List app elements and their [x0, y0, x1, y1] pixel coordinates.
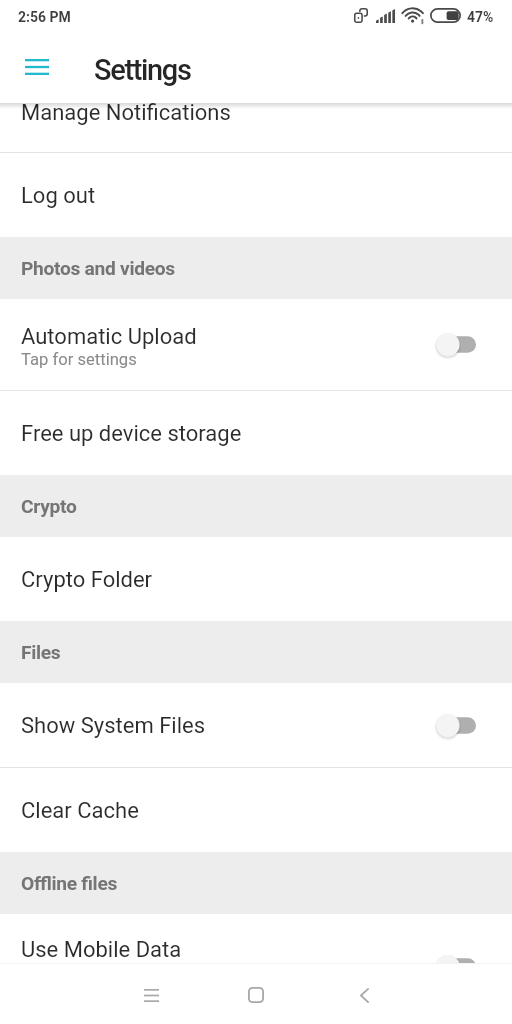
staticText: Log out — [21, 183, 96, 209]
button[interactable]: Back — [342, 973, 386, 1017]
staticText: Show System Files — [21, 713, 206, 739]
button[interactable]: Home — [234, 973, 278, 1017]
staticText: 47% — [467, 9, 494, 25]
staticText: Free up device storage — [21, 421, 242, 447]
staticText: Crypto Folder — [21, 567, 153, 593]
staticText: 2:56 PM — [18, 9, 71, 25]
button[interactable]: Show System Files — [0, 683, 512, 767]
staticText: Manage Notifications — [21, 103, 231, 126]
button[interactable]: Clear Cache — [0, 768, 512, 852]
staticText: Files — [21, 641, 61, 664]
button[interactable]: Recent apps — [129, 973, 173, 1017]
button[interactable]: Crypto Folder — [0, 537, 512, 621]
staticText: Settings — [94, 53, 191, 87]
staticText: Use Mobile Data — [21, 937, 182, 963]
button[interactable]: Manage Notifications — [0, 103, 512, 152]
button[interactable]: Log out — [0, 153, 512, 237]
staticText: Crypto — [21, 495, 77, 518]
staticText: Automatic Upload — [21, 324, 197, 350]
staticText: Clear Cache — [21, 798, 139, 824]
staticText: Offline files — [21, 872, 118, 895]
staticText: Photos and videos — [21, 257, 175, 280]
staticText: Tap for settings — [21, 350, 137, 369]
button[interactable]: Free up device storage — [0, 391, 512, 475]
button[interactable]: Automatic Upload — [0, 299, 512, 390]
button[interactable]: Use Mobile Data — [0, 914, 512, 963]
button[interactable]: Open navigation menu — [14, 45, 58, 89]
